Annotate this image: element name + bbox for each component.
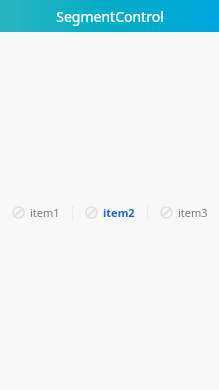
other: item3 icon [160,206,173,219]
button[interactable]: item1 icon [7,198,65,227]
other: item2 icon [85,206,98,219]
button[interactable]: item3 icon [155,198,213,227]
staticText: SegmentControl [56,7,164,26]
staticText: item2 [103,205,135,220]
staticText: item1 [30,205,60,220]
button[interactable]: item2 icon [80,198,140,227]
staticText: item3 [178,205,208,220]
other: item1 icon [12,206,25,219]
